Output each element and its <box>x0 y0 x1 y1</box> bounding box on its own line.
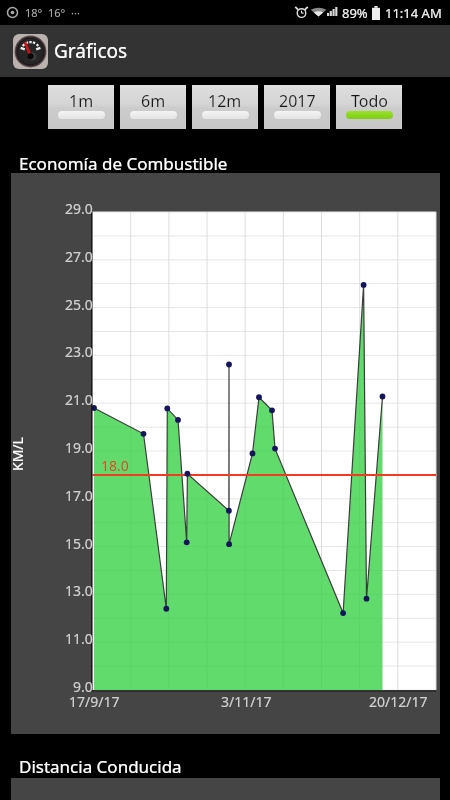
staticText: 29.0 <box>65 199 93 218</box>
staticText: 2017 <box>279 90 316 112</box>
staticText: 11:14 AM <box>385 4 442 22</box>
staticText: 12m <box>208 90 242 112</box>
button[interactable]: 6m <box>120 85 186 129</box>
staticText: 25.0 <box>65 295 93 314</box>
staticText: 17.0 <box>65 486 93 505</box>
other: App icon <box>13 34 48 69</box>
staticText: 89% <box>342 4 368 22</box>
staticText: 6m <box>141 90 166 112</box>
staticText: 15.0 <box>65 534 93 553</box>
staticText: 9.0 <box>73 677 93 696</box>
staticText: Economía de Combustible <box>19 152 228 175</box>
staticText: 1m <box>69 90 94 112</box>
button[interactable]: Todo <box>336 85 402 129</box>
staticText: 20/12/17 <box>369 692 428 711</box>
staticText: Gráficos <box>54 38 128 64</box>
staticText: 3/11/17 <box>221 692 272 711</box>
staticText: 18.0 <box>101 456 129 475</box>
staticText: Distancia Conducida <box>19 755 182 778</box>
staticText: Todo <box>351 90 388 112</box>
staticText: 19.0 <box>65 438 93 457</box>
button[interactable]: 2017 <box>264 85 330 129</box>
button[interactable]: 12m <box>192 85 258 129</box>
staticText: 11.0 <box>65 629 93 648</box>
staticText: 23.0 <box>65 342 93 361</box>
staticText: 27.0 <box>65 247 93 266</box>
staticText: 18° 16° ··· <box>25 5 80 20</box>
staticText: 21.0 <box>65 390 93 409</box>
button[interactable]: 29.0 <box>11 173 440 734</box>
staticText: 17/9/17 <box>69 692 120 711</box>
staticText: KM/L <box>8 437 26 471</box>
staticText: 13.0 <box>65 581 93 600</box>
button[interactable]: 1m <box>48 85 114 129</box>
